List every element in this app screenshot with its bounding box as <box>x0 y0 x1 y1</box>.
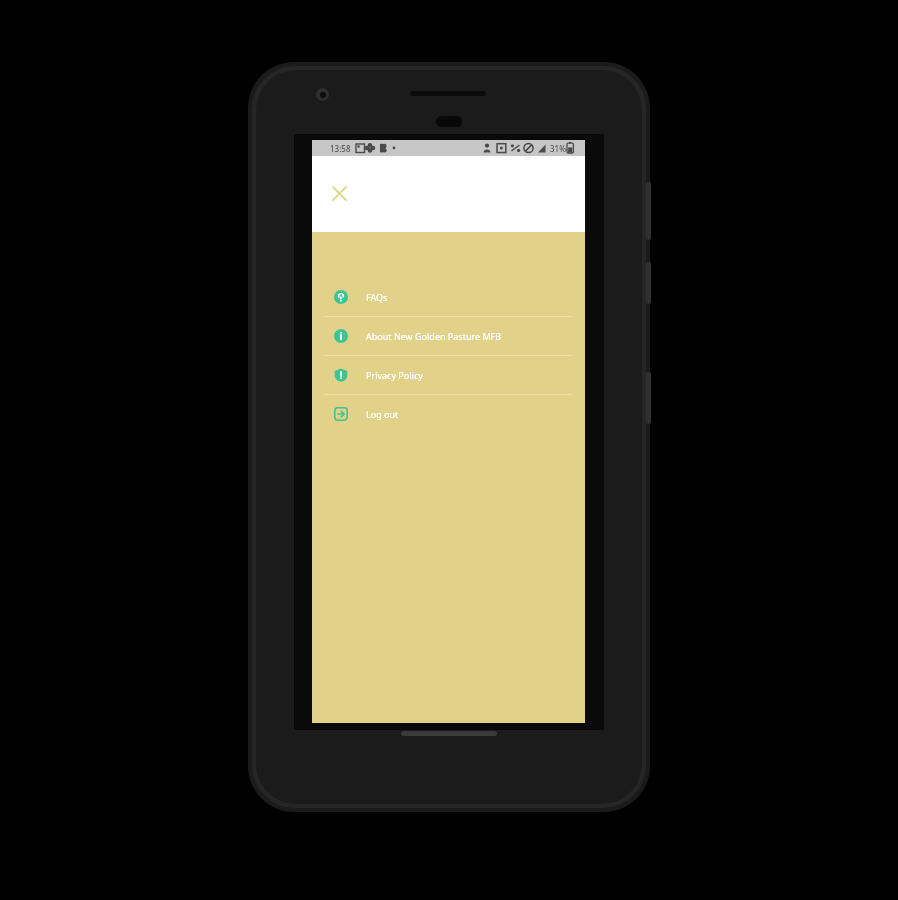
button[interactable]: Privacy Policy <box>312 356 585 394</box>
button[interactable]: Close <box>324 178 354 208</box>
button[interactable]: About New Golden Pasture MFB <box>312 317 585 355</box>
staticText: Privacy Policy <box>366 369 423 381</box>
staticText: FAQs <box>366 291 388 303</box>
staticText: Log out <box>366 408 399 420</box>
staticText: 31% <box>550 143 566 154</box>
staticText: About New Golden Pasture MFB <box>366 330 502 342</box>
staticText: 13:58 <box>330 143 351 154</box>
button[interactable]: Log out <box>312 395 585 433</box>
button[interactable]: FAQs <box>312 278 585 316</box>
